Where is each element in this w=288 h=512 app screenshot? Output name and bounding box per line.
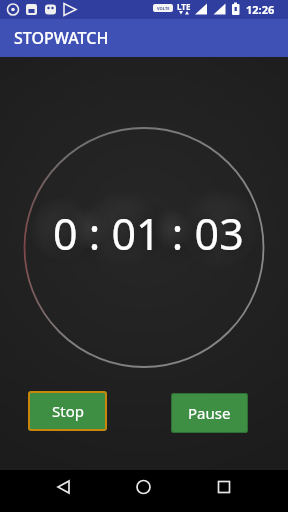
- staticText: VOLTE: [157, 6, 170, 11]
- button[interactable]: [0, 470, 96, 512]
- button[interactable]: Pause: [171, 393, 248, 433]
- button[interactable]: [192, 470, 288, 512]
- staticText: Stop: [52, 401, 84, 421]
- button[interactable]: [96, 470, 192, 512]
- staticText: LTE: [177, 1, 191, 12]
- staticText: 0 : 01 : 03: [53, 204, 244, 263]
- staticText: STOPWATCH: [14, 27, 109, 49]
- button[interactable]: Stop: [28, 391, 107, 431]
- staticText: 12:26: [246, 2, 275, 17]
- staticText: Pause: [188, 403, 231, 423]
